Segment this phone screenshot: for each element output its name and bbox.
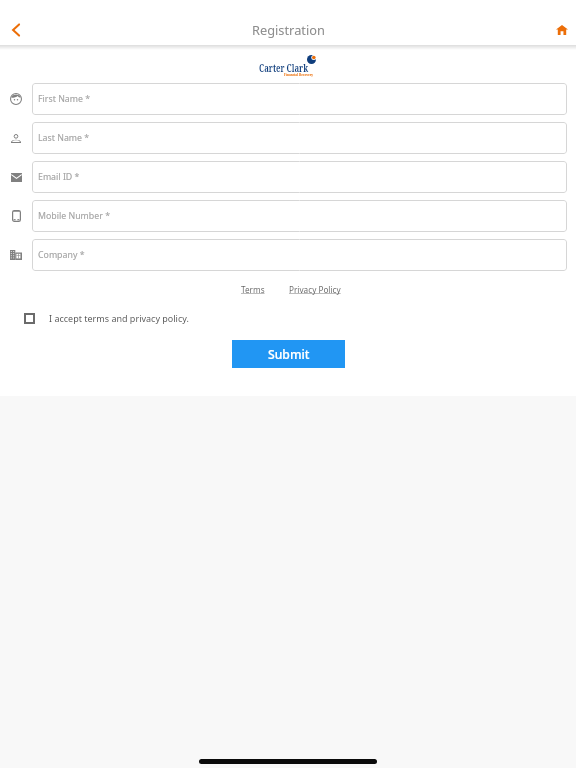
button[interactable]: Submit [232,340,345,368]
staticText: Terms [241,284,265,295]
button[interactable]: Last Name * [32,122,567,154]
staticText: Submit [268,346,310,363]
staticText: Mobile Number * [38,210,110,222]
staticText: First Name * [38,93,91,105]
button[interactable]: Home [548,16,576,44]
staticText: Carter Clark [259,61,309,75]
staticText: I accept terms and privacy policy. [49,312,189,324]
button[interactable]: Back [2,16,30,44]
button[interactable]: Email ID * [32,161,567,193]
staticText: Financial Recovery [284,72,313,77]
button[interactable]: Mobile Number * [32,200,567,232]
staticText: Last Name * [38,132,90,144]
button[interactable]: First Name * [32,83,567,115]
staticText: Company * [38,249,85,261]
staticText: Privacy Policy [289,284,341,295]
staticText: Registration [252,21,325,38]
button[interactable]: Company * [32,239,567,271]
staticText: Email ID * [38,171,80,183]
button[interactable]: Terms [239,282,267,297]
button[interactable]: I accept terms and privacy policy. [24,306,576,330]
button[interactable]: Privacy Policy [287,282,343,297]
